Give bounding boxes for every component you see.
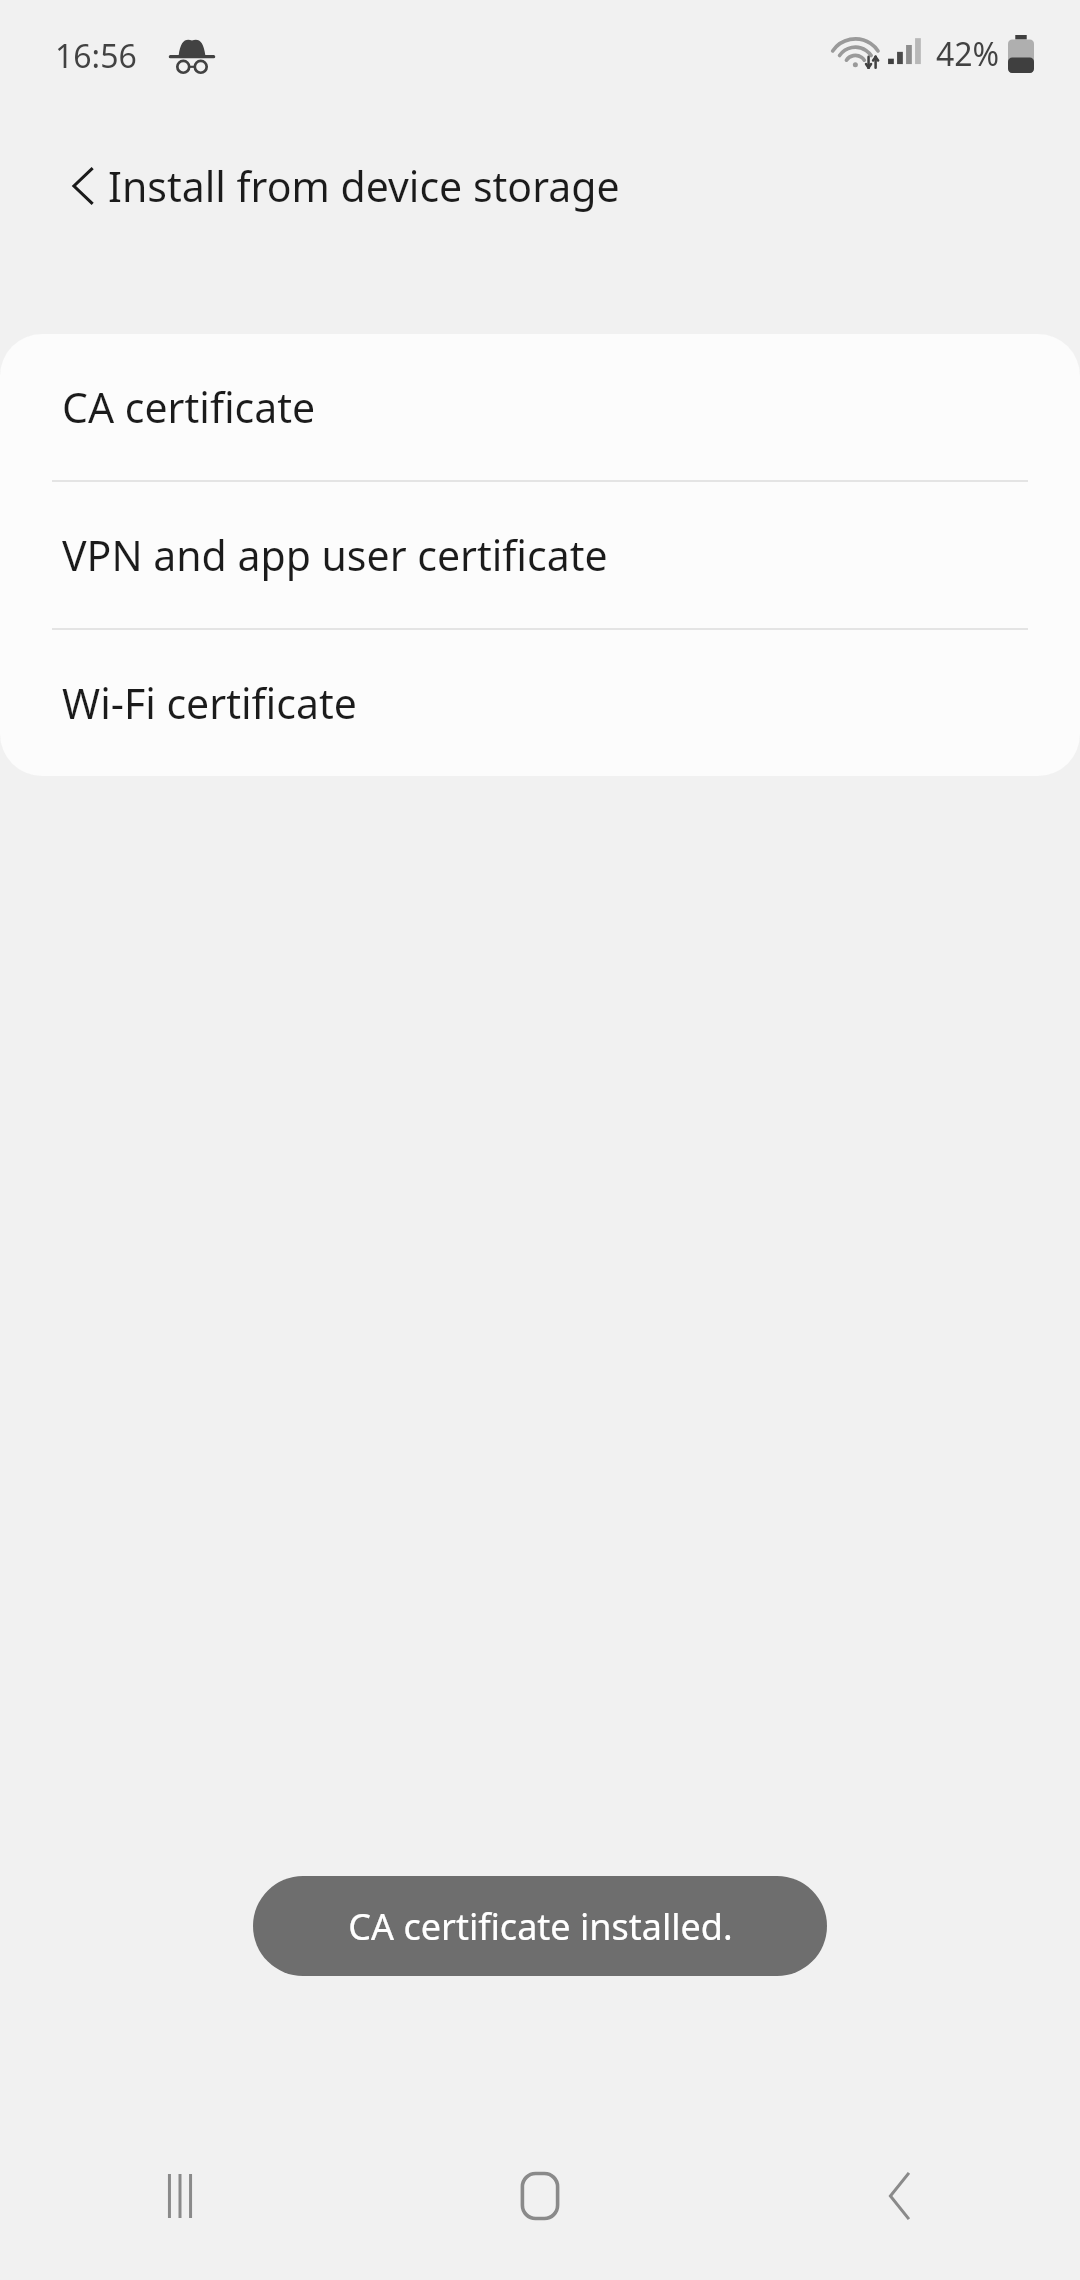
button[interactable]: Navigate up (38, 140, 130, 232)
staticText: Install from device storage (108, 158, 620, 214)
staticText: Wi-Fi certificate (62, 675, 357, 731)
button[interactable]: VPN and app user certificate (0, 482, 1080, 628)
staticText: CA certificate (62, 379, 316, 435)
button[interactable]: Back (720, 2112, 1080, 2280)
staticText: 16:56 (55, 34, 137, 78)
staticText: CA certificate installed. (348, 1902, 733, 1951)
button[interactable]: CA certificate (0, 334, 1080, 480)
staticText: 42% (936, 32, 1000, 76)
button[interactable]: Wi-Fi certificate (0, 630, 1080, 776)
button[interactable]: Recent apps (0, 2112, 360, 2280)
staticText: VPN and app user certificate (62, 527, 608, 583)
button[interactable]: Home (360, 2112, 720, 2280)
